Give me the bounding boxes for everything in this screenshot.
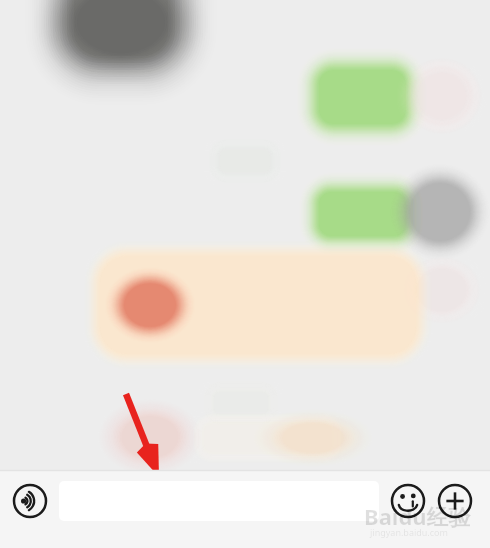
button[interactable]: More xyxy=(437,483,473,519)
button[interactable]: Emoji xyxy=(390,483,426,519)
button[interactable]: Voice input xyxy=(12,483,48,519)
staticText: jingyan.baidu.com xyxy=(370,526,448,538)
staticText: Baidu经验 xyxy=(364,501,471,531)
